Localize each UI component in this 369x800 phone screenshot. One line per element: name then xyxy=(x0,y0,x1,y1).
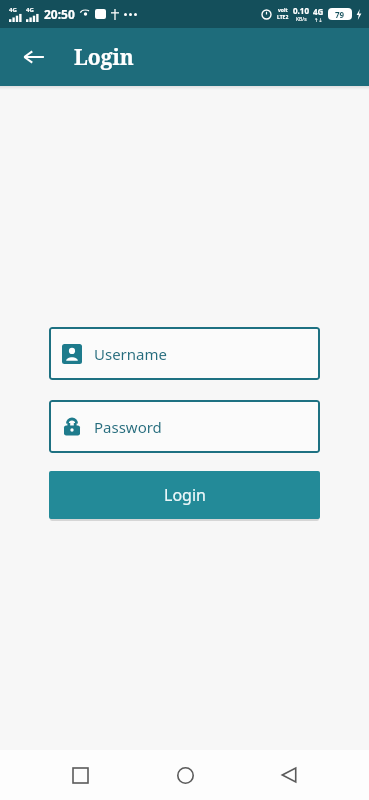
button[interactable]: Back xyxy=(265,751,313,799)
staticText: KB/s xyxy=(296,16,307,23)
button[interactable]: Username xyxy=(49,327,320,380)
staticText: Login xyxy=(164,484,206,506)
button[interactable]: Recent apps xyxy=(56,751,104,799)
staticText: 4G xyxy=(9,6,17,14)
button[interactable]: Login xyxy=(49,471,320,519)
button[interactable]: Password xyxy=(49,400,320,453)
button[interactable]: Home xyxy=(161,751,209,799)
staticText: volt xyxy=(278,7,288,14)
staticText: 4G xyxy=(313,6,324,17)
staticText: LTE2 xyxy=(277,14,289,21)
staticText: ↑↓ xyxy=(314,17,323,23)
button[interactable]: Back xyxy=(12,35,56,79)
staticText: 20:50 xyxy=(44,6,75,22)
staticText: 79 xyxy=(335,9,345,20)
staticText: 0.10 xyxy=(293,5,309,16)
staticText: Password xyxy=(94,417,162,437)
staticText: Login xyxy=(74,43,134,72)
staticText: Username xyxy=(94,344,167,364)
staticText: 4G xyxy=(26,6,34,14)
